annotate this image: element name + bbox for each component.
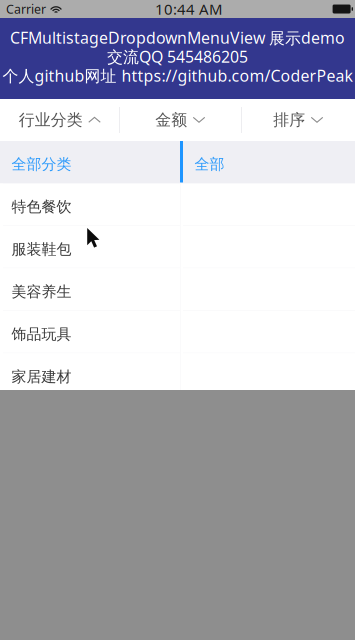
staticText: 排序 — [273, 110, 305, 130]
button[interactable]: 全部分类 — [0, 141, 180, 183]
button[interactable]: 特色餐饮 — [0, 183, 180, 226]
staticText: 美容养生 — [11, 282, 71, 301]
button[interactable]: 美容养生 — [0, 268, 180, 311]
staticText: 交流QQ 545486205 — [107, 46, 248, 67]
button[interactable]: 全部 — [180, 141, 355, 183]
staticText: 个人github网址 https://github.com/CoderPeak — [2, 65, 352, 86]
staticText: 特色餐饮 — [11, 197, 71, 216]
staticText: 行业分类 — [19, 110, 83, 130]
staticText: 家居建材 — [11, 367, 71, 386]
staticText: 金额 — [155, 110, 187, 130]
button[interactable]: 行业分类 — [0, 99, 119, 141]
staticText: 全部 — [194, 155, 224, 174]
button[interactable]: 家居建材 — [0, 353, 180, 396]
button[interactable] — [180, 353, 355, 396]
staticText: CFMultistageDropdownMenuView 展示demo — [10, 27, 345, 48]
staticText: 饰品玩具 — [11, 325, 71, 344]
staticText: Carrier — [6, 1, 46, 17]
button[interactable]: 金额 — [119, 99, 241, 141]
staticText: 10:44 AM — [155, 0, 223, 19]
button[interactable]: 排序 — [241, 99, 355, 141]
button[interactable]: 饰品玩具 — [0, 311, 180, 353]
staticText: 服装鞋包 — [11, 240, 71, 259]
staticText: 全部分类 — [11, 155, 71, 174]
button[interactable]: 服装鞋包 — [0, 226, 180, 268]
